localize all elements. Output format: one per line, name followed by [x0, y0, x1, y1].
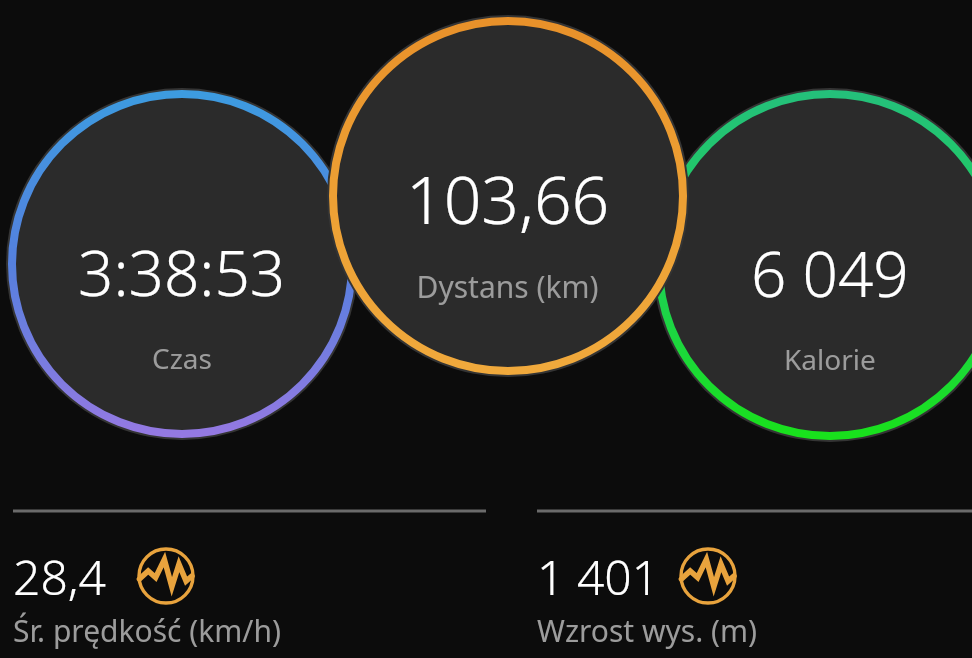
- button[interactable]: Średnia prędkość 28,4 km/h: [13, 530, 486, 648]
- button[interactable]: Dystans 103,66 km: [333, 21, 683, 371]
- button[interactable]: Czas 3:38:53: [12, 94, 352, 434]
- button[interactable]: Kalorie 6 049: [660, 94, 972, 436]
- button[interactable]: Wzrost wysokości 1 401 m: [537, 530, 972, 648]
